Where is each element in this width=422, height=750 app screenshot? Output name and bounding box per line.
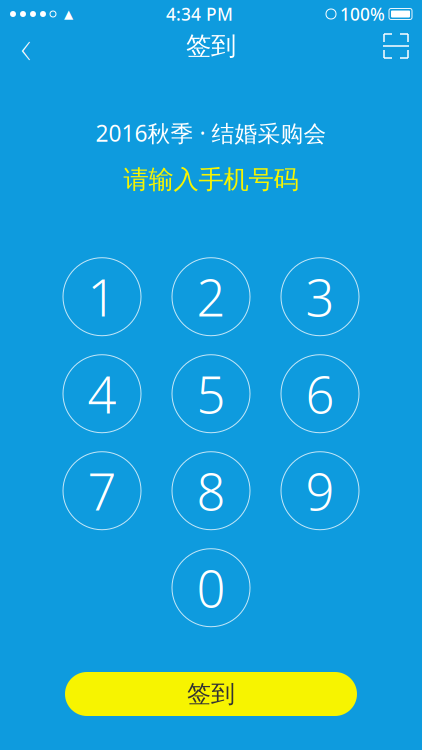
button[interactable]: 4	[52, 345, 152, 442]
button[interactable]: 5	[161, 345, 261, 442]
button[interactable]: 1	[52, 248, 152, 345]
button[interactable]: 0	[161, 539, 261, 636]
button[interactable]: 8	[161, 442, 261, 539]
staticText: 0	[196, 554, 225, 621]
staticText: 9	[305, 457, 334, 524]
button[interactable]: 9	[270, 442, 370, 539]
button[interactable]: 签到	[65, 672, 357, 716]
button[interactable]: Back	[4, 24, 48, 68]
button[interactable]: 2	[161, 248, 261, 345]
button[interactable]: Scan	[374, 24, 418, 68]
staticText: 签到	[186, 30, 236, 61]
button[interactable]: 3	[270, 248, 370, 345]
staticText: 7	[87, 457, 116, 524]
staticText: 4:34 PM	[166, 2, 233, 25]
staticText: 3	[305, 263, 334, 330]
staticText: 4	[87, 360, 116, 427]
staticText: 100%	[340, 2, 385, 25]
staticText: 2	[196, 263, 225, 330]
staticText: 5	[196, 360, 225, 427]
staticText: 请输入手机号码	[123, 164, 298, 195]
button[interactable]: 7	[52, 442, 152, 539]
staticText: 8	[196, 457, 225, 524]
staticText: 签到	[187, 679, 235, 709]
staticText: 6	[305, 360, 334, 427]
staticText: 2016秋季 · 结婚采购会	[95, 118, 326, 148]
staticText: ‹	[20, 14, 31, 78]
staticText: ▲	[64, 7, 73, 21]
button[interactable]: 6	[270, 345, 370, 442]
staticText: 1	[87, 263, 116, 330]
